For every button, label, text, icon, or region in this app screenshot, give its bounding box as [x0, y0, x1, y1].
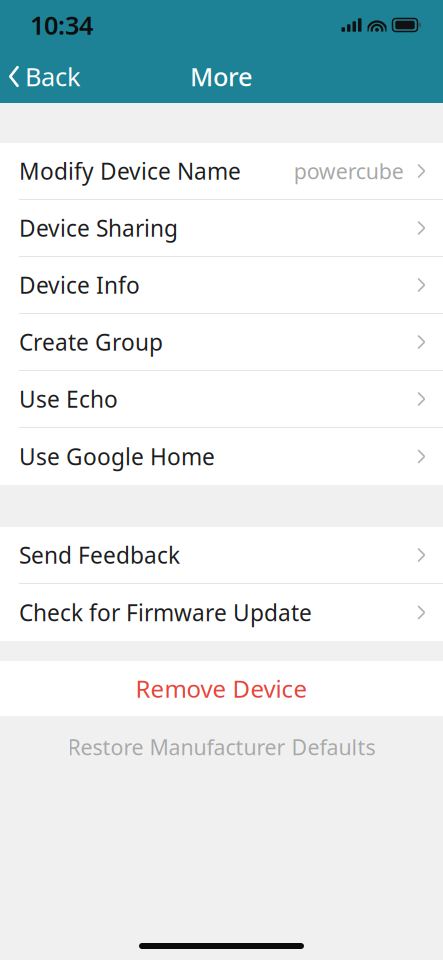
staticText: More — [190, 60, 253, 93]
button[interactable]: Remove Device — [0, 661, 443, 716]
button[interactable]: Back — [0, 50, 93, 103]
button[interactable]: Modify Device Name — [0, 143, 443, 200]
button[interactable]: Create Group — [0, 314, 443, 371]
staticText: Use Echo — [19, 384, 118, 414]
staticText: Device Info — [19, 270, 140, 300]
staticText: Restore Manufacturer Defaults — [67, 733, 375, 761]
staticText: Use Google Home — [19, 441, 215, 471]
staticText: Back — [25, 60, 81, 93]
button[interactable]: Check for Firmware Update — [0, 584, 443, 641]
staticText: Device Sharing — [19, 213, 178, 243]
button[interactable]: Send Feedback — [0, 527, 443, 584]
staticText: powercube — [294, 157, 404, 185]
staticText: Create Group — [19, 327, 163, 357]
staticText: 10:34 — [30, 8, 93, 42]
button[interactable]: Device Info — [0, 257, 443, 314]
button[interactable]: Device Sharing — [0, 200, 443, 257]
button[interactable]: Restore Manufacturer Defaults — [0, 716, 443, 778]
button[interactable]: Use Echo — [0, 371, 443, 428]
staticText: Modify Device Name — [19, 156, 241, 186]
staticText: Remove Device — [135, 673, 307, 704]
staticText: Check for Firmware Update — [19, 597, 312, 627]
staticText: Send Feedback — [19, 540, 180, 570]
button[interactable]: Use Google Home — [0, 428, 443, 485]
